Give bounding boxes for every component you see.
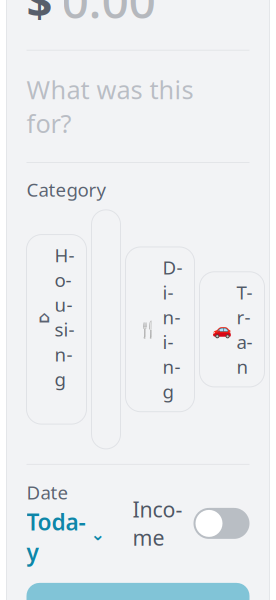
staticText: Category (26, 177, 106, 202)
staticText: 🚗 (211, 320, 231, 338)
button[interactable]: 🍴 (125, 247, 194, 412)
staticText: Housing (54, 243, 74, 391)
staticText: $ (26, 0, 52, 30)
staticText: 0.00 (61, 0, 155, 32)
button[interactable]: Add (26, 583, 249, 600)
staticText: Date (26, 480, 68, 505)
staticText: Tran (236, 280, 252, 379)
button[interactable]: 🚗 (199, 272, 264, 387)
staticText: ⌂ (38, 308, 49, 326)
staticText: 🍴 (137, 320, 157, 338)
button[interactable]: Income toggle (193, 508, 249, 539)
button[interactable]: Date (26, 480, 105, 567)
staticText: ⌄ (90, 524, 105, 544)
staticText: Dining (162, 255, 182, 404)
staticText: Income (132, 495, 182, 552)
button[interactable]: ⌂ (26, 235, 86, 424)
staticText: What was this for? (26, 73, 193, 140)
staticText: Today (26, 507, 85, 567)
